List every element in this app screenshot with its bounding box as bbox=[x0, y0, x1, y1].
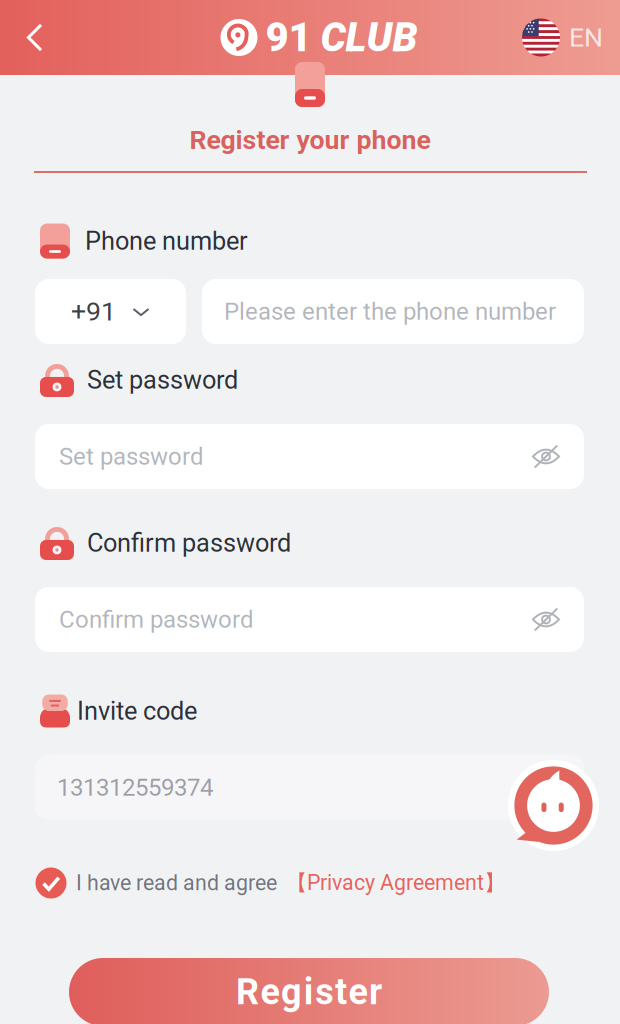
staticText: Please enter the phone number bbox=[224, 297, 556, 325]
staticText: I have read and agree bbox=[76, 870, 277, 895]
staticText: +91 bbox=[71, 296, 116, 327]
button[interactable]: 【Privacy Agreement】 bbox=[277, 870, 505, 896]
staticText: Register your phone bbox=[189, 124, 430, 156]
staticText: Invite code bbox=[77, 696, 197, 726]
staticText: CLUB bbox=[320, 14, 417, 61]
staticText: Phone number bbox=[85, 226, 248, 256]
button[interactable]: Customer support bbox=[508, 760, 599, 851]
button[interactable]: Language: English bbox=[522, 0, 620, 75]
staticText: Set password bbox=[59, 442, 204, 470]
staticText: Confirm password bbox=[59, 605, 254, 633]
staticText: 131312559374 bbox=[57, 773, 213, 801]
button[interactable]: Register bbox=[69, 958, 549, 1024]
button[interactable]: Agree to the privacy agreement bbox=[31, 863, 71, 903]
staticText: EN bbox=[569, 22, 603, 53]
staticText: Set password bbox=[87, 365, 238, 395]
staticText: 91 bbox=[265, 14, 311, 61]
button[interactable]: Show set password bbox=[526, 436, 566, 476]
button[interactable]: Back bbox=[0, 0, 70, 75]
staticText: 【Privacy Agreement】 bbox=[286, 870, 505, 896]
staticText: Register bbox=[236, 971, 382, 1013]
staticText: Confirm password bbox=[87, 528, 291, 558]
button[interactable]: Country code +91 bbox=[35, 279, 186, 344]
button[interactable]: Show confirm password bbox=[526, 599, 566, 639]
